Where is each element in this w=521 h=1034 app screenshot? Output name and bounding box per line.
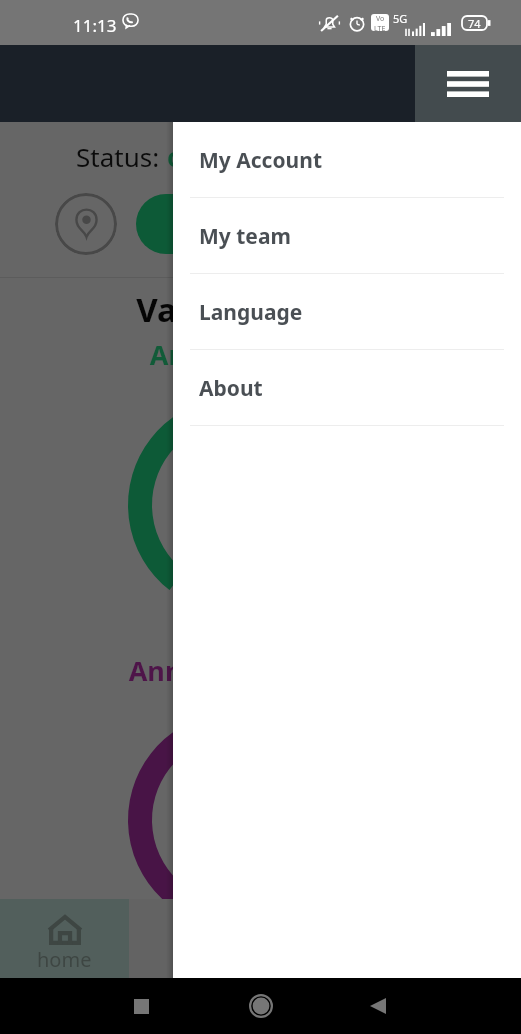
staticText: Value of orders <box>0 287 521 332</box>
staticText: Status: <box>76 139 160 174</box>
staticText: LTE <box>374 24 386 31</box>
staticText: 74 <box>468 16 481 31</box>
button[interactable]: Go offline <box>136 194 466 254</box>
staticText: Annual commission <box>0 652 521 689</box>
staticText: About <box>199 374 263 403</box>
button[interactable]: Location <box>55 193 117 255</box>
staticText: My team <box>199 222 291 251</box>
button[interactable]: Back <box>356 984 400 1028</box>
staticText: Go offline <box>250 210 353 239</box>
staticText: Annual turnover <box>0 336 521 373</box>
staticText: 5G <box>393 11 408 26</box>
staticText: My Account <box>199 146 322 175</box>
staticText: Vo <box>376 14 385 24</box>
button[interactable]: My team <box>173 198 521 274</box>
staticText: 11:13 <box>73 14 117 37</box>
staticText: Language <box>199 298 303 327</box>
button[interactable]: My Account <box>173 122 521 198</box>
staticText: online <box>167 139 249 174</box>
button[interactable]: About <box>173 350 521 426</box>
button[interactable]: home <box>0 899 129 978</box>
button[interactable]: Home <box>239 984 283 1028</box>
button[interactable]: Language <box>173 274 521 350</box>
button[interactable]: Recents <box>119 984 163 1028</box>
button[interactable]: Menu <box>415 45 521 122</box>
staticText: home <box>37 946 92 973</box>
